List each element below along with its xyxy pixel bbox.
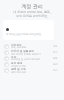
staticText: 개인정보: [11, 43, 22, 46]
staticText: 결제 수단 관리: [11, 71, 26, 73]
button[interactable]: 데이터 및 맞춤설정: [0, 49, 64, 55]
staticText: 관리: [53, 63, 58, 66]
staticText: 연락처 및 위치: [11, 65, 26, 67]
button[interactable]: 결제 및 구독: [0, 67, 64, 73]
staticText: 설정: [53, 57, 58, 60]
staticText: 결제 및 구독: [11, 67, 26, 71]
staticText: 데이터 및 맞춤설정: [11, 49, 34, 53]
staticText: 내 계정과 관련된 정보, 활동, 보안 옵션을 관리하세요: [0, 10, 64, 17]
staticText: 계정 관리: [0, 3, 64, 10]
button[interactable]: 개인정보: [0, 43, 64, 49]
button[interactable]: 공유 환경: [0, 61, 64, 67]
staticText: 계정 데이터 및 활동 관리하기: [11, 53, 41, 55]
staticText: 개인정보 보호 진단을 받아보세요: [6, 32, 42, 35]
staticText: 비밀번호 및 2단계 인증 설정: [11, 58, 40, 61]
staticText: 보기: [53, 69, 58, 72]
staticText: 이름, 생년월일: [11, 46, 26, 49]
button[interactable]: 개인정보 보호 진단을 받아보세요: [3, 20, 54, 40]
button[interactable]: 보안: [0, 55, 64, 61]
staticText: 수정: [53, 45, 58, 48]
staticText: 보기: [53, 51, 58, 54]
staticText: 공유 환경: [11, 61, 23, 65]
staticText: 보안: [11, 55, 17, 58]
